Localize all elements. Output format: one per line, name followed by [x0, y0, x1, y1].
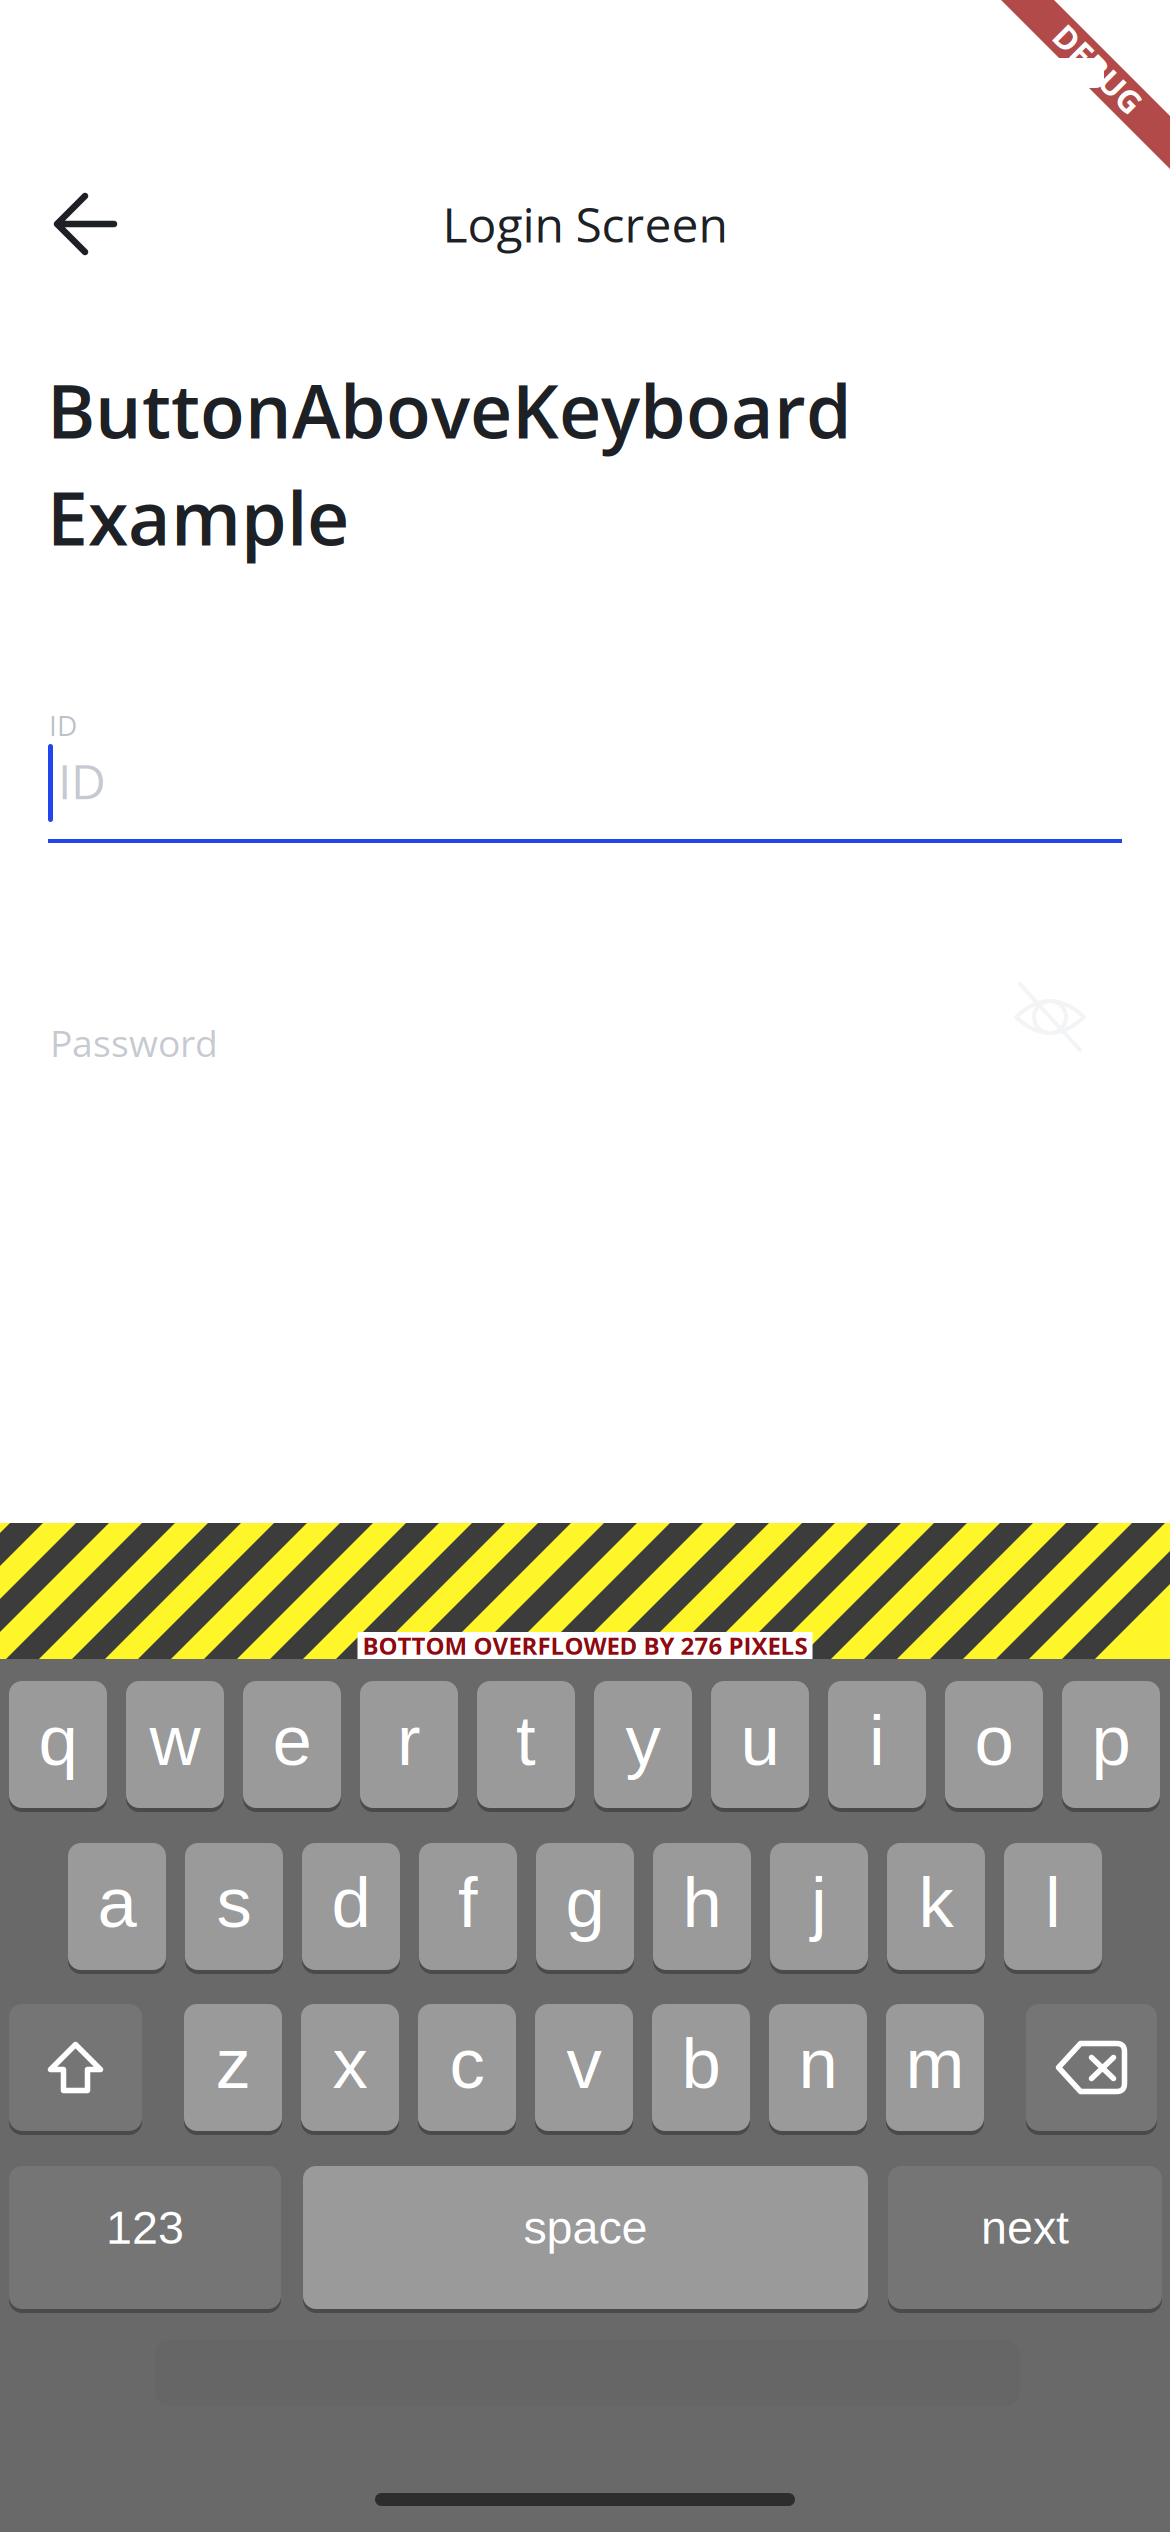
button[interactable]: b — [652, 2004, 750, 2135]
staticText: a — [97, 1863, 136, 1942]
staticText: DEBUG — [1042, 47, 1153, 91]
staticText: x — [332, 2024, 367, 2103]
button[interactable]: v — [535, 2004, 633, 2135]
button[interactable]: n — [769, 2004, 867, 2135]
staticText: i — [869, 1701, 885, 1780]
staticText: next — [981, 2201, 1069, 2253]
staticText: k — [918, 1863, 953, 1942]
button[interactable]: p — [1062, 1681, 1160, 1812]
staticText: r — [397, 1701, 421, 1780]
staticText: ButtonAboveKeyboard — [47, 360, 852, 460]
staticText: u — [740, 1701, 779, 1780]
staticText: d — [331, 1863, 370, 1942]
button[interactable]: d — [302, 1843, 400, 1974]
button[interactable]: Back — [25, 164, 145, 284]
staticText: f — [458, 1863, 478, 1942]
staticText: Password — [50, 1017, 218, 1068]
button[interactable]: a — [68, 1843, 166, 1974]
button[interactable]: next — [888, 2166, 1162, 2313]
staticText: BOTTOM OVERFLOWED BY 276 PIXELS — [362, 1629, 807, 1662]
staticText: y — [625, 1701, 660, 1780]
button[interactable]: x — [301, 2004, 399, 2135]
button[interactable]: l — [1004, 1843, 1102, 1974]
staticText: o — [974, 1701, 1013, 1780]
staticText: c — [449, 2024, 484, 2103]
staticText: l — [1045, 1863, 1061, 1942]
staticText: b — [681, 2024, 720, 2103]
button[interactable]: u — [711, 1681, 809, 1812]
staticText: m — [905, 2024, 964, 2103]
button[interactable]: Show password — [1005, 972, 1095, 1062]
button[interactable]: f — [419, 1843, 517, 1974]
button[interactable]: q — [9, 1681, 107, 1812]
staticText: e — [272, 1701, 311, 1780]
button[interactable]: k — [887, 1843, 985, 1974]
staticText: h — [682, 1863, 721, 1942]
button[interactable]: i — [828, 1681, 926, 1812]
staticText: q — [38, 1701, 77, 1780]
button[interactable]: j — [770, 1843, 868, 1974]
staticText: ID — [49, 706, 77, 744]
staticText: Example — [47, 467, 349, 567]
button[interactable]: o — [945, 1681, 1043, 1812]
button[interactable] — [9, 2004, 142, 2135]
button[interactable]: space — [303, 2166, 868, 2313]
staticText: p — [1091, 1701, 1130, 1780]
staticText: t — [516, 1701, 536, 1780]
staticText: s — [216, 1863, 251, 1942]
button[interactable] — [1026, 2004, 1157, 2135]
button[interactable]: g — [536, 1843, 634, 1974]
staticText: 123 — [106, 2201, 184, 2253]
staticText: Login Screen — [442, 191, 727, 257]
button[interactable]: m — [886, 2004, 984, 2135]
staticText: space — [523, 2201, 647, 2253]
button[interactable]: h — [653, 1843, 751, 1974]
button[interactable]: t — [477, 1681, 575, 1812]
staticText: g — [565, 1863, 604, 1942]
staticText: v — [566, 2024, 601, 2103]
staticText: w — [149, 1701, 200, 1780]
button[interactable]: r — [360, 1681, 458, 1812]
staticText: ID — [58, 748, 106, 813]
button[interactable]: w — [126, 1681, 224, 1812]
button[interactable]: s — [185, 1843, 283, 1974]
staticText: n — [798, 2024, 837, 2103]
button[interactable]: y — [594, 1681, 692, 1812]
button[interactable]: c — [418, 2004, 516, 2135]
button[interactable]: e — [243, 1681, 341, 1812]
button[interactable]: 123 — [9, 2166, 281, 2313]
staticText: j — [811, 1863, 827, 1942]
staticText: z — [215, 2024, 250, 2103]
button[interactable]: z — [184, 2004, 282, 2135]
